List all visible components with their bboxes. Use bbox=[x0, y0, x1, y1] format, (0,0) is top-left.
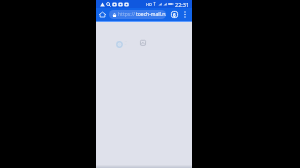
staticText: HD bbox=[146, 2, 152, 7]
button[interactable]: More options bbox=[181, 8, 188, 21]
staticText: 22:31 bbox=[175, 1, 190, 8]
staticText: 6 bbox=[173, 12, 176, 18]
button[interactable]: https:// bbox=[109, 10, 166, 19]
staticText: toech-mail.ru bbox=[136, 11, 166, 18]
staticText: https:// bbox=[118, 11, 136, 18]
button[interactable]: Home bbox=[96, 8, 109, 21]
button[interactable]: Tabs bbox=[169, 8, 180, 21]
